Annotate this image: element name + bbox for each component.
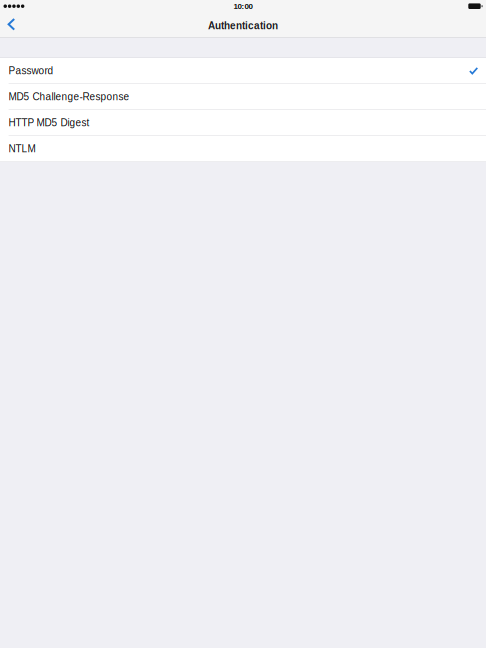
staticText: MD5 Challenge-Response: [9, 91, 130, 102]
staticText: 10:00: [233, 2, 252, 11]
staticText: Authentication: [208, 20, 278, 31]
button[interactable]: Back: [0, 16, 25, 37]
button[interactable]: NTLM: [0, 136, 486, 162]
staticText: NTLM: [9, 143, 36, 154]
staticText: Password: [9, 65, 54, 76]
button[interactable]: HTTP MD5 Digest: [0, 110, 486, 136]
button[interactable]: Password: [0, 58, 486, 84]
button[interactable]: MD5 Challenge-Response: [0, 84, 486, 110]
staticText: HTTP MD5 Digest: [9, 117, 90, 128]
